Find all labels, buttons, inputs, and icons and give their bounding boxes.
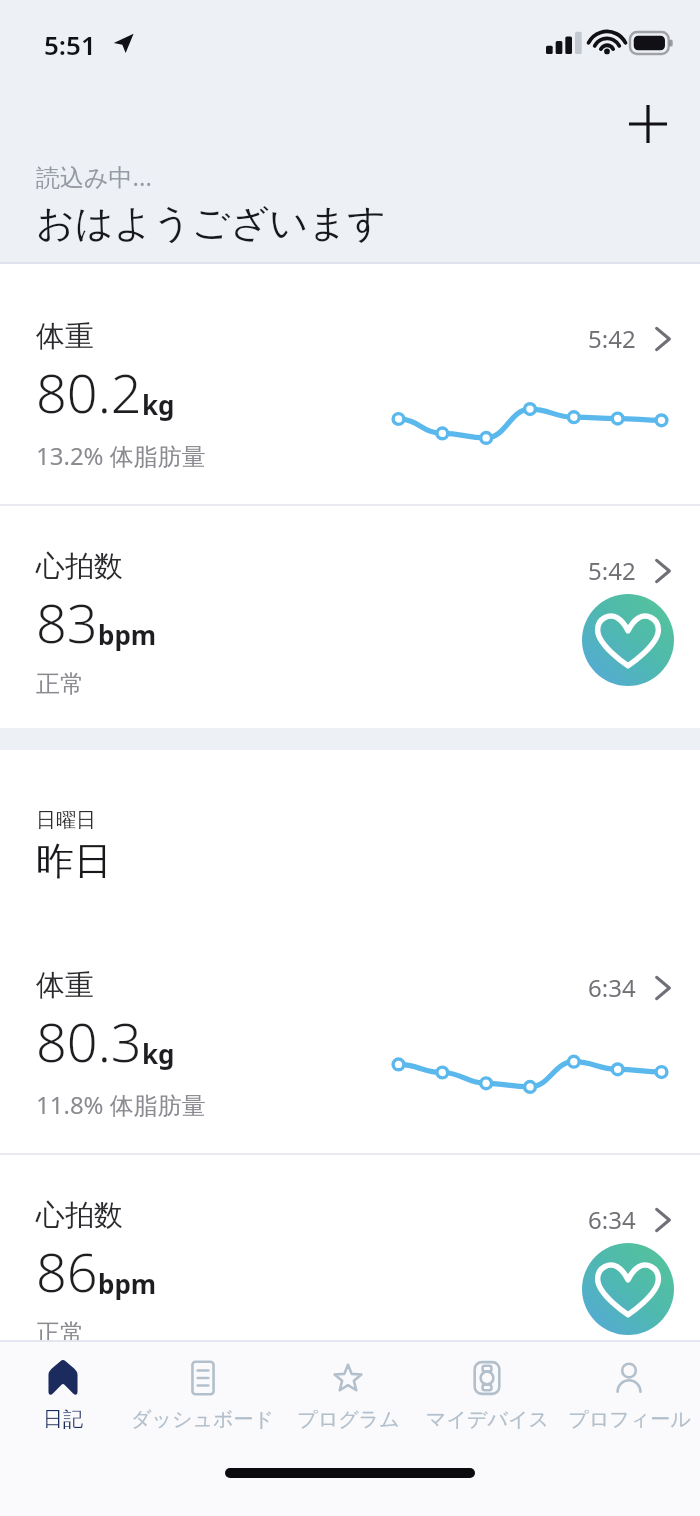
button[interactable]: 体重 <box>0 264 700 504</box>
staticText: 80.2 <box>36 355 142 429</box>
staticText: bpm <box>98 1266 157 1301</box>
button[interactable]: マイデバイス <box>416 1342 558 1454</box>
staticText: 体重 <box>36 318 94 355</box>
button[interactable]: プログラム <box>280 1342 416 1454</box>
other: Details <box>654 974 672 1002</box>
staticText: 13.2% 体脂肪量 <box>36 439 206 472</box>
button[interactable]: 心拍数 <box>0 506 700 728</box>
staticText: 6:34 <box>588 1203 636 1236</box>
staticText: kg <box>142 1036 175 1071</box>
other: Details <box>654 557 672 585</box>
staticText: 5:42 <box>588 322 636 355</box>
staticText: マイデバイス <box>426 1407 549 1432</box>
staticText: 心拍数 <box>36 548 123 585</box>
staticText: 5:51 <box>44 27 96 62</box>
staticText: 86 <box>36 1234 98 1308</box>
other: Details <box>654 1206 672 1234</box>
staticText: 5:42 <box>588 554 636 587</box>
other: Details <box>654 325 672 353</box>
staticText: 正常 <box>36 669 84 699</box>
staticText: 日記 <box>43 1407 83 1432</box>
staticText: ダッシュボード <box>131 1407 274 1432</box>
button[interactable]: プロフィール <box>558 1342 700 1454</box>
button[interactable]: ダッシュボード <box>125 1342 280 1454</box>
staticText: おはようございます <box>36 199 387 247</box>
staticText: 80.3 <box>36 1004 142 1078</box>
staticText: kg <box>142 387 175 422</box>
staticText: 心拍数 <box>36 1197 123 1234</box>
staticText: プログラム <box>297 1407 400 1432</box>
button[interactable]: 心拍数 <box>0 1155 700 1340</box>
button[interactable]: 日記 <box>0 1342 125 1454</box>
staticText: 昨日 <box>36 837 112 885</box>
button[interactable]: Add <box>608 84 688 164</box>
staticText: bpm <box>98 617 157 652</box>
staticText: 11.8% 体脂肪量 <box>36 1088 206 1121</box>
staticText: 日曜日 <box>36 808 96 833</box>
staticText: プロフィール <box>568 1407 691 1432</box>
staticText: 読込み中... <box>36 160 152 193</box>
staticText: 体重 <box>36 967 94 1004</box>
staticText: 6:34 <box>588 971 636 1004</box>
staticText: 83 <box>36 585 98 659</box>
staticText: 正常 <box>36 1318 84 1340</box>
button[interactable]: 体重 <box>0 913 700 1153</box>
